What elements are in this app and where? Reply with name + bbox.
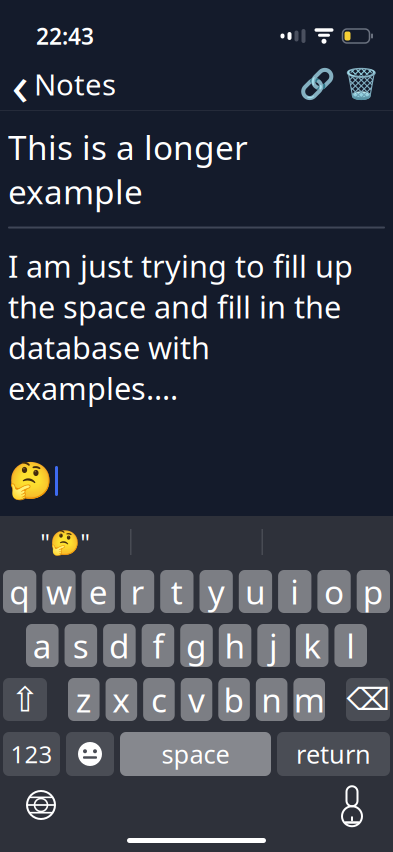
- staticText: g: [186, 623, 207, 668]
- staticText: e: [89, 569, 108, 614]
- button[interactable]: l: [334, 624, 367, 667]
- button[interactable]: space: [120, 732, 271, 776]
- button[interactable]: a: [26, 624, 59, 667]
- staticText: return: [296, 737, 371, 771]
- button[interactable]: w: [42, 570, 76, 613]
- button[interactable]: g: [180, 624, 213, 667]
- button[interactable]: e: [82, 570, 115, 613]
- staticText: j: [269, 623, 278, 668]
- button[interactable]: v: [181, 678, 212, 721]
- staticText: v: [188, 677, 205, 722]
- staticText: w: [46, 569, 72, 614]
- staticText: z: [76, 677, 92, 722]
- staticText: k: [303, 623, 321, 668]
- staticText: b: [224, 677, 245, 722]
- staticText: h: [225, 623, 246, 668]
- staticText: x: [112, 677, 130, 722]
- button[interactable]: q: [3, 570, 36, 613]
- button[interactable]: t: [160, 570, 193, 613]
- button[interactable]: "🤔": [0, 518, 130, 566]
- staticText: 123: [10, 738, 52, 770]
- staticText: l: [346, 623, 355, 668]
- button[interactable]: i: [278, 570, 311, 613]
- button[interactable]: x: [106, 678, 137, 721]
- button[interactable]: p: [357, 570, 390, 613]
- staticText: m: [294, 677, 325, 722]
- staticText: This is a longer example: [8, 125, 248, 213]
- staticText: Notes: [34, 64, 116, 103]
- button[interactable]: Delete: [346, 678, 390, 721]
- button[interactable]: 123: [3, 732, 60, 776]
- button[interactable]: f: [142, 624, 174, 667]
- button[interactable]: o: [317, 570, 351, 613]
- button[interactable]: Emoji keyboard: [66, 732, 114, 776]
- staticText: p: [363, 569, 384, 614]
- button[interactable]: return: [277, 732, 390, 776]
- staticText: I am just trying to fill up the space an…: [8, 245, 353, 408]
- staticText: q: [9, 569, 30, 614]
- staticText: ‹: [11, 47, 28, 121]
- staticText: s: [73, 623, 89, 668]
- staticText: t: [171, 569, 183, 614]
- staticText: 🤔: [8, 460, 53, 501]
- staticText: r: [131, 569, 145, 614]
- button[interactable]: Link: [295, 62, 339, 106]
- staticText: y: [208, 569, 225, 614]
- staticText: "🤔": [40, 526, 90, 558]
- button[interactable]: u: [239, 570, 272, 613]
- staticText: 22:43: [36, 21, 94, 51]
- button[interactable]: d: [103, 624, 136, 667]
- button[interactable]: h: [219, 624, 251, 667]
- button[interactable]: Shift: [3, 678, 47, 721]
- button[interactable]: c: [143, 678, 175, 721]
- button[interactable]: j: [257, 624, 290, 667]
- staticText: u: [245, 569, 266, 614]
- staticText: ⌫: [346, 682, 389, 717]
- staticText: n: [261, 677, 282, 722]
- staticText: ⇧: [10, 680, 39, 719]
- button[interactable]: r: [121, 570, 154, 613]
- button[interactable]: y: [199, 570, 233, 613]
- staticText: i: [290, 569, 299, 614]
- button[interactable]: k: [296, 624, 328, 667]
- button[interactable]: s: [65, 624, 97, 667]
- button[interactable]: b: [218, 678, 250, 721]
- button[interactable]: Delete note: [339, 62, 383, 106]
- button[interactable]: Next keyboard: [16, 782, 66, 828]
- staticText: 🗑️: [342, 67, 379, 101]
- staticText: 🔗: [298, 67, 335, 101]
- staticText: o: [324, 569, 344, 614]
- staticText: d: [109, 623, 130, 668]
- button[interactable]: n: [256, 678, 287, 721]
- button[interactable]: z: [68, 678, 100, 721]
- button[interactable]: ‹: [0, 56, 124, 111]
- staticText: c: [151, 677, 167, 722]
- staticText: a: [33, 623, 52, 668]
- staticText: space: [161, 737, 229, 771]
- button[interactable]: Dictate: [327, 782, 377, 828]
- button[interactable]: m: [293, 678, 325, 721]
- staticText: f: [152, 623, 163, 668]
